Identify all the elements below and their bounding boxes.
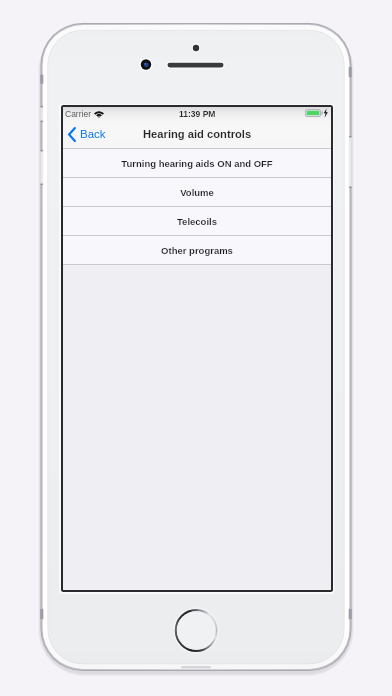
staticText: Back <box>80 128 106 141</box>
staticText: Carrier <box>65 109 91 118</box>
button[interactable]: Back <box>63 123 114 146</box>
staticText: Telecoils <box>177 216 217 227</box>
staticText: Other programs <box>161 245 233 256</box>
button[interactable]: Telecoils <box>63 207 331 236</box>
button[interactable]: Turning hearing aids ON and OFF <box>63 149 331 178</box>
staticText: Turning hearing aids ON and OFF <box>121 158 273 169</box>
staticText: Hearing aid controls <box>143 128 252 141</box>
staticText: 11:39 PM <box>179 109 216 118</box>
button[interactable]: Volume <box>63 178 331 207</box>
staticText: Volume <box>180 187 214 198</box>
button[interactable]: Other programs <box>63 236 331 265</box>
